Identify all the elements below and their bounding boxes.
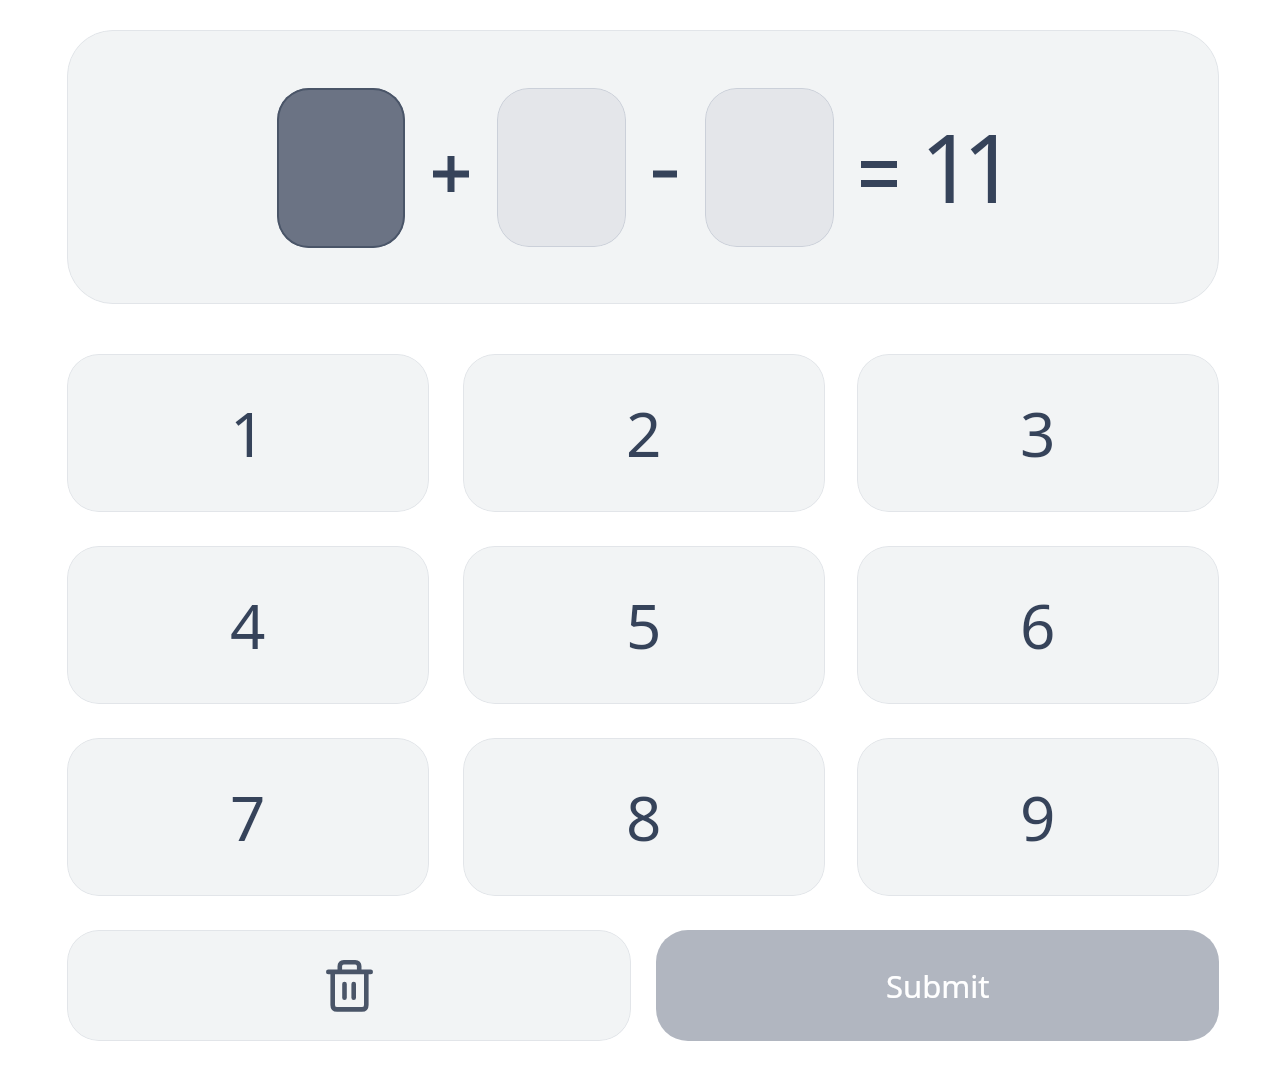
button[interactable]: Empty number slot xyxy=(497,88,626,247)
button[interactable]: Clear xyxy=(67,930,631,1041)
staticText: 3 xyxy=(1020,391,1056,475)
button[interactable]: 3 xyxy=(857,354,1219,512)
staticText: 7 xyxy=(230,775,266,859)
staticText: 5 xyxy=(626,583,662,667)
staticText: 8 xyxy=(626,775,662,859)
button[interactable]: 8 xyxy=(463,738,825,896)
staticText: 4 xyxy=(230,583,266,667)
button[interactable]: 9 xyxy=(857,738,1219,896)
button[interactable]: 7 xyxy=(67,738,429,896)
button[interactable]: Empty number slot xyxy=(705,88,834,247)
staticText: 2 xyxy=(626,391,662,475)
button[interactable]: 4 xyxy=(67,546,429,704)
button[interactable]: 6 xyxy=(857,546,1219,704)
staticText: 11 xyxy=(920,101,1005,230)
staticText: 9 xyxy=(1020,775,1056,859)
button[interactable]: Selected number slot xyxy=(277,88,405,248)
staticText: 6 xyxy=(1020,583,1056,667)
button[interactable]: 2 xyxy=(463,354,825,512)
staticText: Submit xyxy=(886,965,990,1007)
button[interactable]: Submit xyxy=(656,930,1219,1041)
button[interactable]: 1 xyxy=(67,354,429,512)
button[interactable]: 5 xyxy=(463,546,825,704)
staticText: 1 xyxy=(230,391,266,475)
